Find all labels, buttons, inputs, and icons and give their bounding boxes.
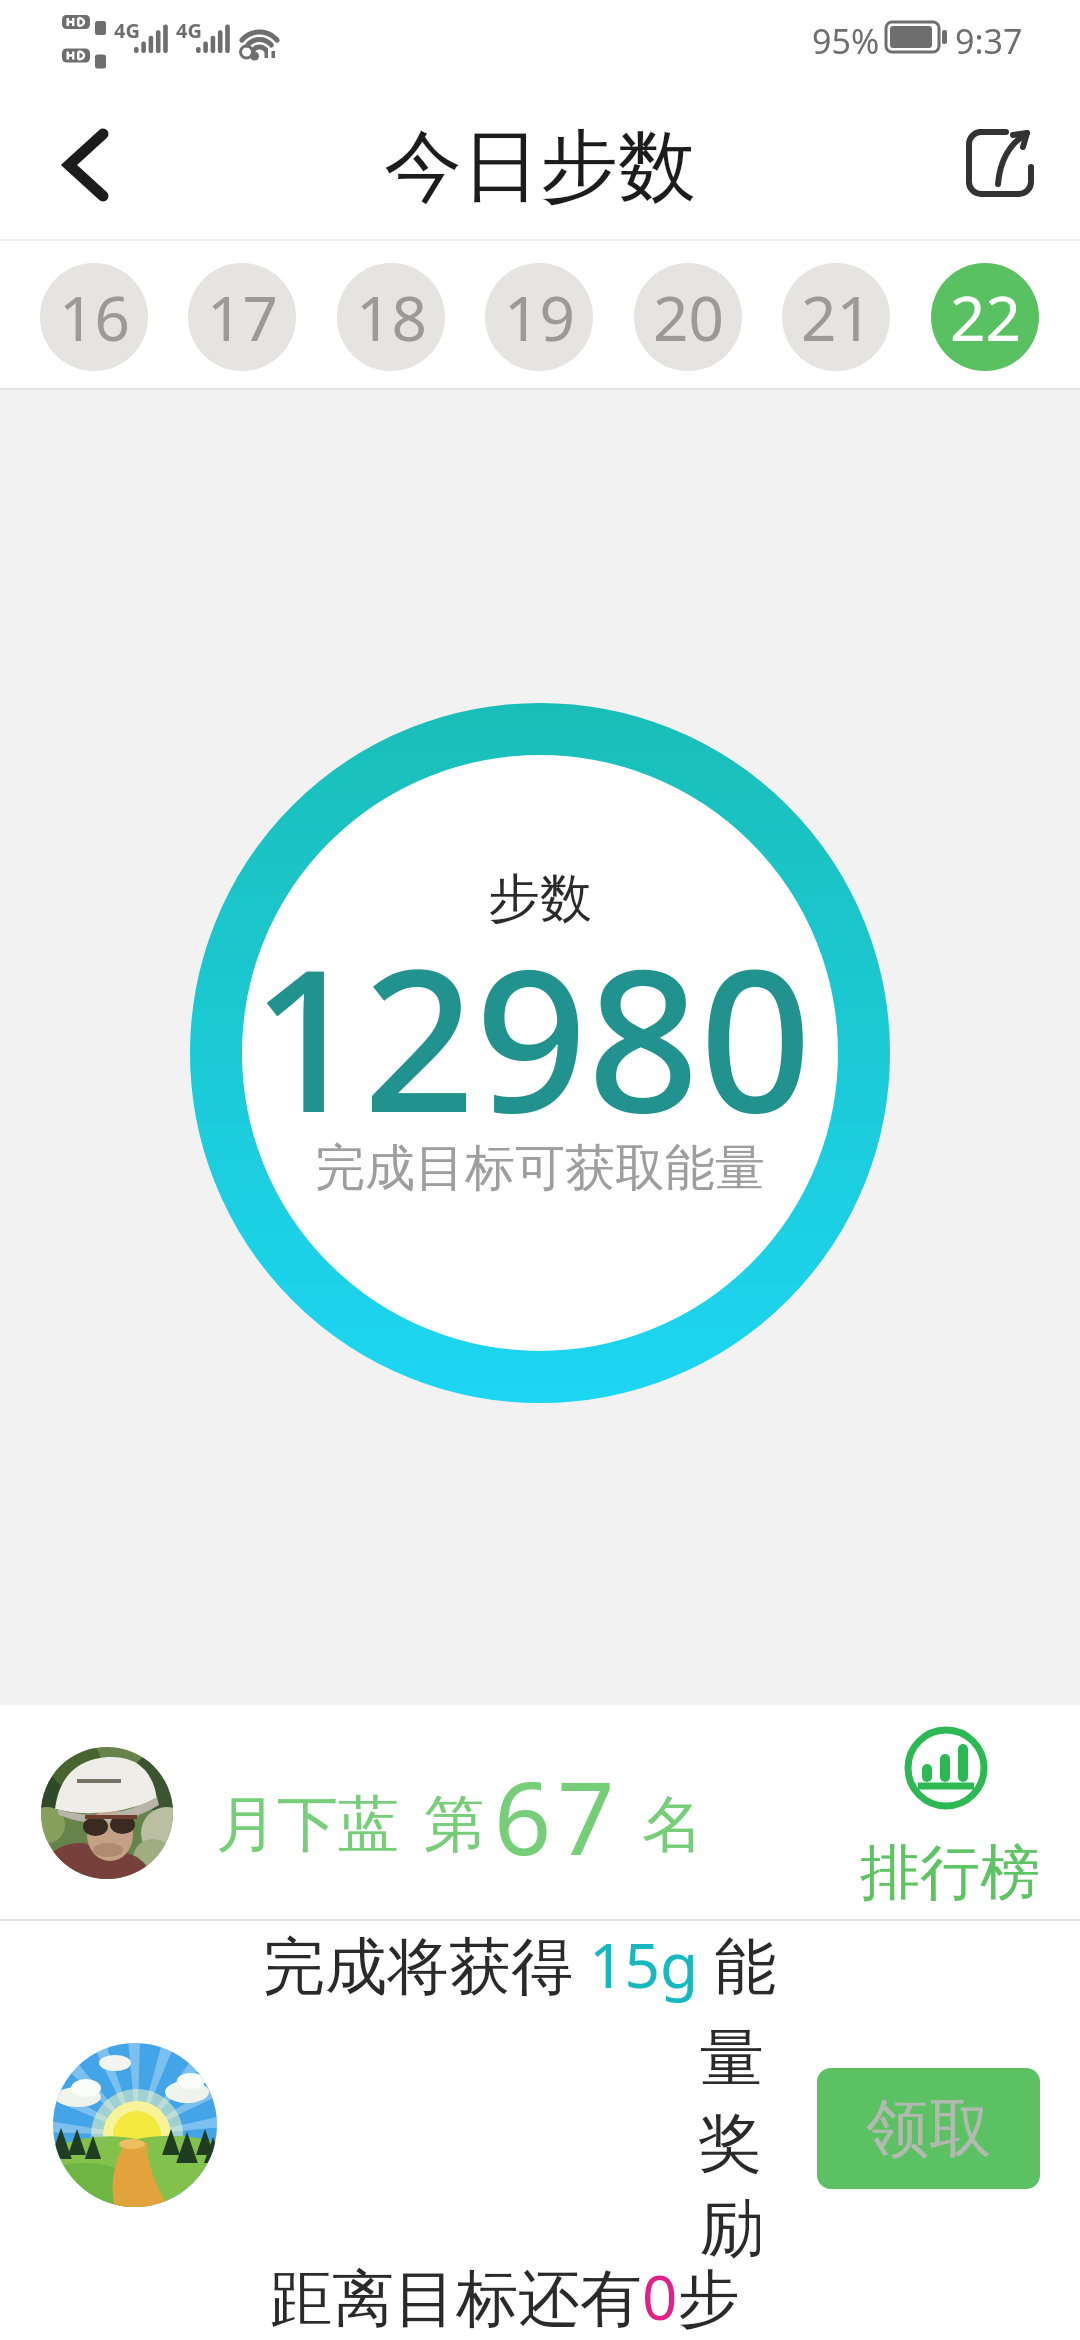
staticText: 名 [642, 1786, 703, 1863]
staticText: 95% [812, 18, 880, 64]
staticText: 17 [207, 275, 278, 359]
staticText: 完成目标可获取能量 [315, 1137, 765, 1200]
staticText: 12980 [251, 902, 812, 1169]
staticText: 排行榜 [860, 1835, 1040, 1911]
staticText: 4G [176, 17, 202, 44]
staticText: 今日步数 [384, 118, 696, 216]
staticText: 距离目标还有0步 [270, 2254, 740, 2339]
button[interactable] [41, 1747, 173, 1879]
button[interactable]: 排行榜 [860, 1715, 1040, 1915]
staticText: 量 [700, 2018, 764, 2099]
staticText: 奖 [698, 2103, 762, 2184]
staticText: 第 [424, 1786, 485, 1863]
button[interactable]: 22 [931, 263, 1039, 371]
button[interactable] [945, 108, 1055, 218]
staticText: 16 [59, 275, 130, 359]
button[interactable]: 17 [188, 263, 296, 371]
staticText: 9:37 [955, 18, 1023, 64]
staticText: 20 [653, 275, 724, 359]
button[interactable]: 18 [337, 263, 445, 371]
staticText: 4G [114, 17, 140, 44]
staticText: 19 [504, 275, 575, 359]
button[interactable]: 19 [485, 263, 593, 371]
staticText: 月下蓝 [216, 1786, 399, 1863]
staticText: 领取 [866, 2089, 992, 2168]
staticText: 67 [494, 1748, 621, 1884]
button[interactable]: 领取 [817, 2068, 1040, 2189]
staticText: 步数 [488, 866, 592, 932]
staticText: 21 [801, 275, 872, 359]
staticText: 18 [356, 275, 427, 359]
button[interactable]: 20 [634, 263, 742, 371]
staticText: 22 [950, 275, 1021, 359]
staticText: 励 [700, 2188, 764, 2269]
button[interactable]: 16 [40, 263, 148, 371]
staticText: 完成将获得 15g 能 [263, 1922, 777, 2007]
button[interactable] [40, 120, 130, 210]
button[interactable]: 21 [782, 263, 890, 371]
